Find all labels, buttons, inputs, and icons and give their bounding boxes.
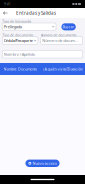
staticText: Tipo de búsqueda: [2, 19, 31, 24]
staticText: Duración: [67, 66, 82, 71]
button[interactable]: Nuevo acceso: [25, 160, 59, 167]
staticText: Documento: [18, 66, 37, 71]
staticText: Buscar: [63, 24, 75, 29]
staticText: Nuevo acceso: [32, 161, 56, 166]
staticText: Cédula/Pasaporte: [4, 38, 33, 43]
button[interactable]: Back: [0, 8, 11, 18]
staticText: Prellegada: [4, 24, 22, 29]
staticText: 9:41: [4, 2, 11, 6]
staticText: Nombre: [4, 66, 17, 71]
staticText: Número de documento: [41, 33, 77, 37]
staticText: Entradas y Salidas: [16, 10, 56, 16]
staticText: ¿A quién visita?: [43, 66, 69, 71]
button[interactable]: Buscar: [61, 23, 76, 30]
staticText: Nombre / Apellido: [4, 52, 35, 57]
staticText: Número de docum…: [42, 38, 78, 43]
staticText: Tipo de documento: [2, 33, 33, 37]
